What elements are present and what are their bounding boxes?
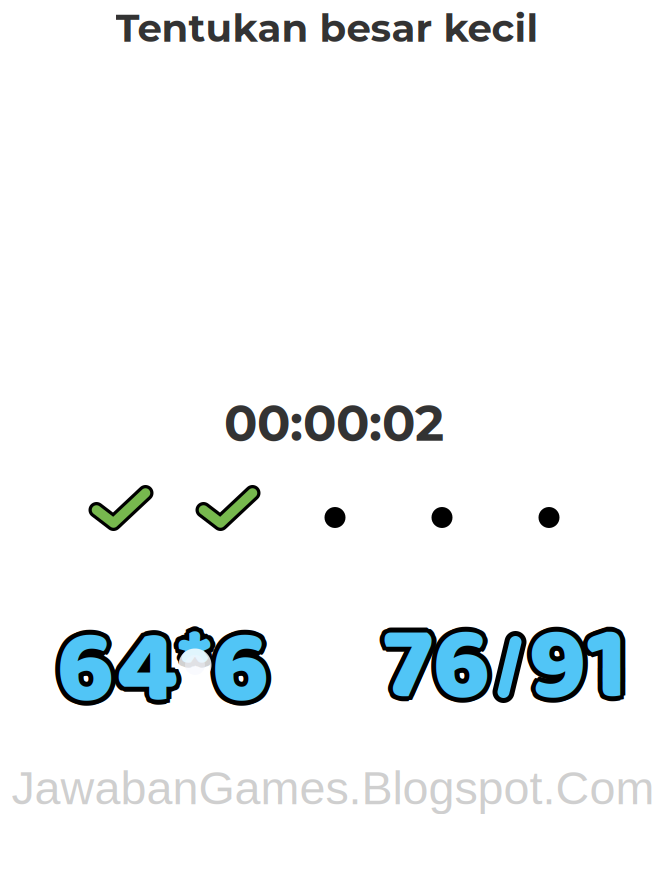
staticText: 76: [377, 584, 485, 750]
staticText: 76: [379, 580, 487, 747]
button[interactable]: 64*6: [56, 587, 269, 753]
staticText: 76: [382, 584, 490, 750]
button[interactable]: 76: [382, 584, 627, 750]
staticText: 64*6: [53, 590, 266, 757]
staticText: 64*6: [51, 587, 264, 753]
staticText: Tentukan besar kecil: [115, 4, 538, 51]
staticText: 76: [387, 584, 495, 750]
staticText: 91: [525, 580, 624, 747]
staticText: 91: [533, 584, 632, 750]
staticText: 91: [523, 584, 622, 750]
staticText: 64*6: [61, 587, 274, 753]
staticText: 64*6: [53, 583, 266, 750]
staticText: 91: [525, 587, 624, 754]
staticText: 91: [532, 587, 631, 754]
staticText: 64*6: [56, 592, 269, 758]
staticText: 64*6: [60, 590, 273, 757]
staticText: 91: [532, 580, 631, 747]
staticText: 76: [382, 589, 490, 755]
staticText: 64*6: [60, 583, 273, 750]
staticText: 76: [386, 587, 494, 754]
staticText: 64*6: [56, 582, 269, 748]
staticText: JawabanGames.Blogspot.Com: [11, 762, 654, 814]
staticText: 76: [382, 579, 490, 745]
staticText: 91: [528, 584, 627, 750]
staticText: 91: [528, 589, 627, 755]
staticText: 64*6: [56, 587, 269, 753]
staticText: 76: [379, 587, 487, 754]
staticText: 00:00:02: [224, 393, 444, 453]
staticText: 91: [528, 579, 627, 745]
staticText: 76: [386, 580, 494, 747]
